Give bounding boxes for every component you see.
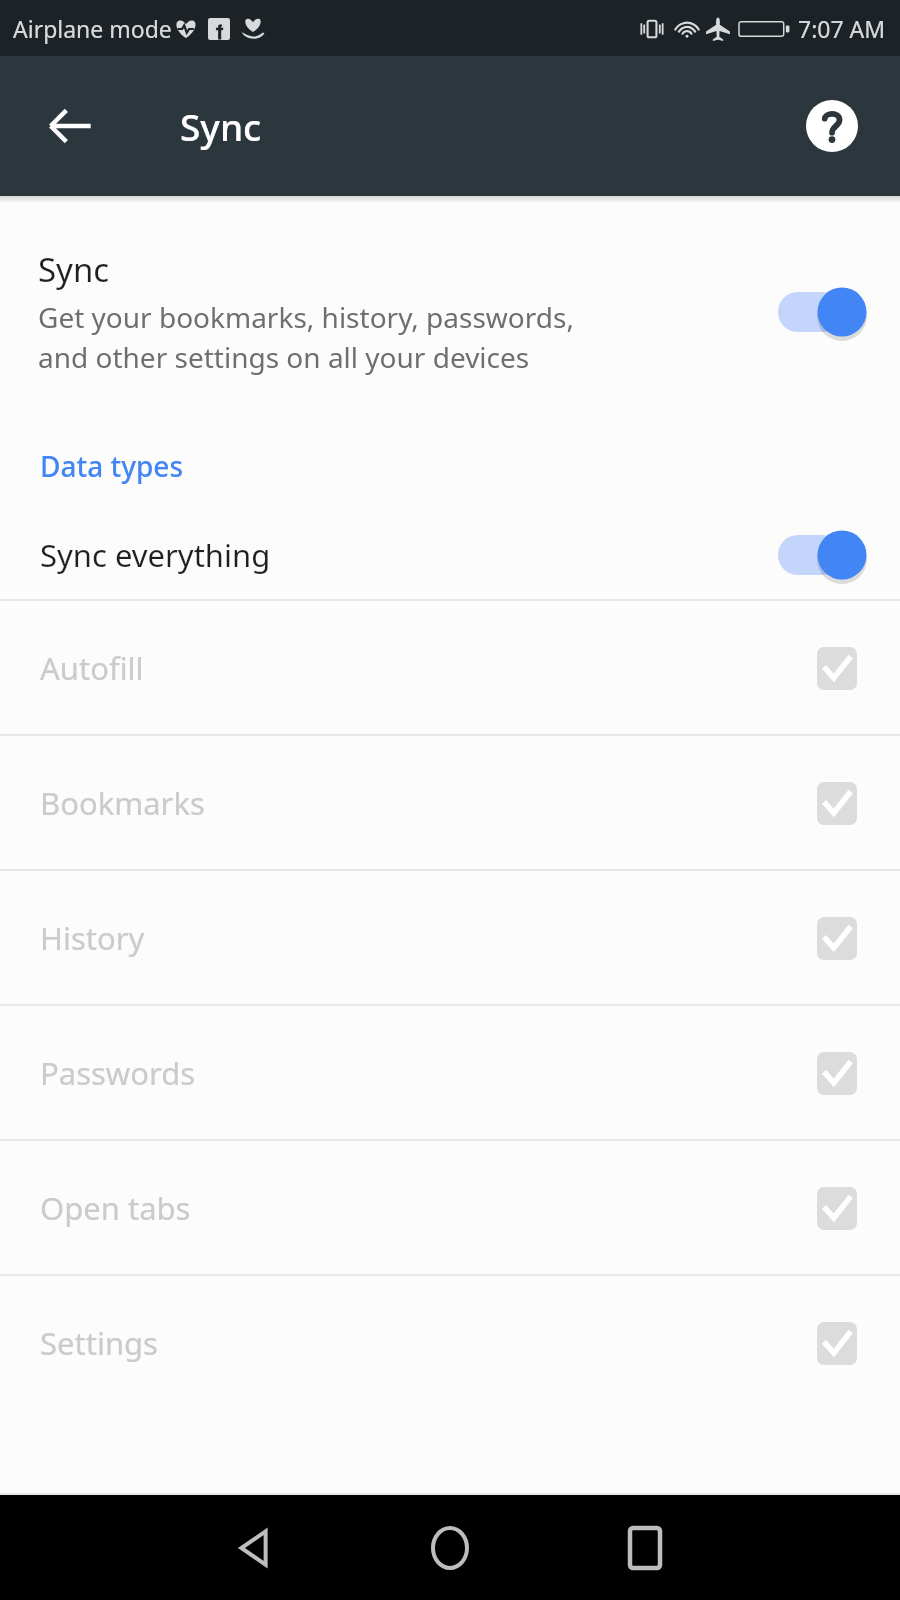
button[interactable]: Settings checkbox	[804, 1310, 870, 1376]
staticText: Airplane mode	[13, 13, 172, 44]
staticText: Bookmarks	[40, 782, 804, 824]
staticText: Passwords	[40, 1052, 804, 1094]
staticText: Data types	[40, 447, 184, 485]
button[interactable]: Bookmarks checkbox	[804, 770, 870, 836]
staticText: Autofill	[40, 647, 804, 689]
button[interactable]: Passwords	[0, 1006, 900, 1139]
button[interactable]: Autofill checkbox	[804, 635, 870, 701]
button[interactable]: Sync	[0, 203, 900, 421]
button[interactable]: Bookmarks	[0, 736, 900, 869]
button[interactable]: Sync everything	[0, 511, 900, 599]
button[interactable]: Home	[395, 1495, 505, 1600]
button[interactable]: Sync toggle	[774, 517, 870, 593]
staticText: Settings	[40, 1322, 804, 1364]
button[interactable]: Open tabs checkbox	[804, 1175, 870, 1241]
button[interactable]: Open tabs	[0, 1141, 900, 1274]
button[interactable]: History checkbox	[804, 905, 870, 971]
staticText: Sync	[38, 247, 110, 292]
staticText: 7:07 AM	[798, 13, 886, 44]
staticText: History	[40, 917, 804, 959]
staticText: Sync everything	[40, 534, 774, 576]
button[interactable]: Back	[200, 1495, 310, 1600]
button[interactable]: History	[0, 871, 900, 1004]
button[interactable]: Autofill	[0, 601, 900, 734]
staticText: Open tabs	[40, 1187, 804, 1229]
button[interactable]: Passwords checkbox	[804, 1040, 870, 1106]
button[interactable]: Back	[28, 84, 112, 168]
staticText: Get your bookmarks, history, passwords, …	[38, 298, 574, 377]
button[interactable]: Settings	[0, 1276, 900, 1409]
button[interactable]: Help	[792, 86, 872, 166]
button[interactable]: Sync toggle	[774, 274, 870, 350]
button[interactable]: Recents	[590, 1495, 700, 1600]
staticText: Sync	[180, 101, 262, 151]
